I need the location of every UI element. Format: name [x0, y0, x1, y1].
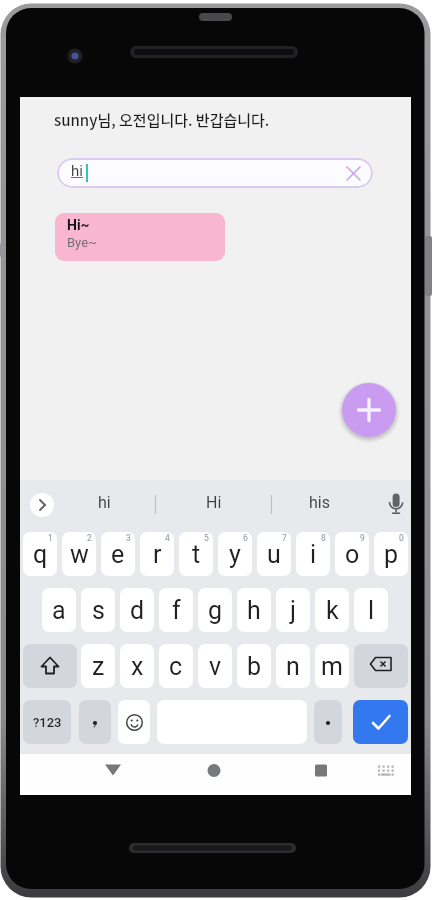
button[interactable]: h [237, 588, 271, 632]
staticText: m [321, 652, 343, 681]
button[interactable]: hi [98, 493, 111, 512]
button[interactable]: a [42, 588, 76, 632]
button[interactable] [98, 758, 128, 784]
button[interactable] [354, 644, 408, 688]
button[interactable]: q [23, 532, 57, 576]
button[interactable]: g [198, 588, 232, 632]
staticText: x [131, 652, 144, 681]
staticText: y [229, 540, 241, 569]
staticText: a [52, 596, 66, 625]
button[interactable]: s [81, 588, 115, 632]
staticText: hi [71, 162, 83, 180]
staticText: Bye~ [67, 235, 97, 250]
button[interactable]: e [101, 532, 135, 576]
button[interactable]: hi [57, 158, 373, 188]
staticText: l [368, 596, 375, 625]
button[interactable]: v [198, 644, 232, 688]
button[interactable]: z [81, 644, 115, 688]
staticText: f [172, 596, 181, 625]
button[interactable]: x [120, 644, 154, 688]
staticText: 6 [243, 533, 248, 543]
staticText: 9 [360, 533, 365, 543]
button[interactable]: his [309, 493, 330, 512]
staticText: n [286, 652, 300, 681]
button[interactable]: ?123 [23, 700, 71, 744]
button[interactable]: p [374, 532, 408, 576]
button[interactable] [342, 383, 396, 437]
button[interactable] [353, 700, 408, 744]
staticText: r [153, 540, 162, 569]
staticText: sunny님, 오전입니다. 반갑습니다. [54, 109, 270, 131]
staticText: e [111, 540, 125, 569]
staticText: q [33, 540, 48, 569]
staticText: h [247, 596, 261, 625]
staticText: 7 [282, 533, 287, 543]
button[interactable]: w [62, 532, 96, 576]
staticText: z [92, 652, 105, 681]
staticText: u [267, 540, 281, 569]
button[interactable] [306, 758, 336, 784]
staticText: 8 [321, 533, 326, 543]
staticText: 1 [48, 533, 53, 543]
button[interactable]: Hi [206, 493, 222, 512]
staticText: 4 [165, 533, 170, 543]
button[interactable]: j [276, 588, 310, 632]
button[interactable]: i [296, 532, 330, 576]
staticText: b [247, 652, 262, 681]
button[interactable]: u [257, 532, 291, 576]
button[interactable]: o [335, 532, 369, 576]
staticText: s [92, 596, 105, 625]
button[interactable]: t [179, 532, 213, 576]
staticText: p [384, 540, 399, 569]
staticText: 2 [87, 533, 92, 543]
staticText: 5 [204, 533, 209, 543]
staticText: k [326, 596, 339, 625]
staticText: v [209, 652, 222, 681]
button[interactable] [79, 700, 111, 744]
button[interactable]: Hi~ [55, 213, 225, 261]
button[interactable]: m [315, 644, 349, 688]
staticText: o [345, 540, 360, 569]
button[interactable] [23, 644, 77, 688]
button[interactable]: b [237, 644, 271, 688]
staticText: ?123 [33, 715, 62, 730]
button[interactable] [118, 700, 150, 744]
staticText: j [290, 596, 296, 625]
button[interactable]: r [140, 532, 174, 576]
staticText: Hi~ [67, 217, 90, 233]
button[interactable]: y [218, 532, 252, 576]
button[interactable] [347, 167, 360, 180]
button[interactable]: k [315, 588, 349, 632]
staticText: d [130, 596, 145, 625]
button[interactable]: d [120, 588, 154, 632]
staticText: 3 [126, 533, 131, 543]
button[interactable]: n [276, 644, 310, 688]
button[interactable] [199, 758, 229, 784]
staticText: g [208, 596, 223, 625]
staticText: t [192, 540, 201, 569]
button[interactable]: l [354, 588, 388, 632]
button[interactable] [314, 700, 342, 744]
staticText: c [169, 652, 183, 681]
staticText: i [310, 540, 317, 569]
button[interactable] [30, 493, 54, 517]
button[interactable]: f [159, 588, 193, 632]
button[interactable]: c [159, 644, 193, 688]
staticText: w [70, 540, 89, 569]
staticText: 0 [399, 533, 404, 543]
button[interactable] [373, 762, 399, 782]
